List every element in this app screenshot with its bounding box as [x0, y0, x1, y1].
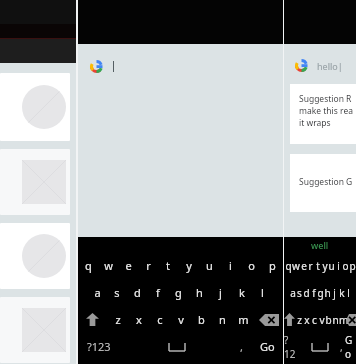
button[interactable]: w: [292, 253, 300, 279]
button[interactable]: Space: [147, 333, 207, 360]
button[interactable]: Shift: [78, 306, 107, 333]
staticText: q: [285, 259, 292, 273]
button[interactable]: Suggestion G: [290, 154, 356, 212]
button[interactable]: m: [233, 306, 254, 333]
staticText: z: [297, 313, 302, 327]
button[interactable]: g: [317, 279, 324, 306]
button[interactable]: well: [284, 237, 356, 253]
staticText: p: [269, 258, 276, 273]
staticText: u: [206, 258, 213, 273]
staticText: o: [342, 259, 349, 273]
button[interactable]: q: [284, 253, 292, 279]
button[interactable]: Suggestion R: [290, 84, 356, 144]
button[interactable]: d: [303, 279, 310, 306]
button[interactable]: x: [303, 306, 311, 333]
button[interactable]: Go: [345, 333, 356, 360]
button[interactable]: h: [324, 279, 331, 306]
button[interactable]: [0, 297, 70, 363]
button[interactable]: c: [311, 306, 318, 333]
button[interactable]: [0, 73, 70, 141]
staticText: c: [157, 312, 163, 327]
button[interactable]: r: [307, 253, 314, 279]
button[interactable]: [0, 149, 70, 215]
staticText: g: [175, 285, 182, 300]
staticText: w: [104, 258, 113, 273]
staticText: t: [316, 259, 320, 273]
button[interactable]: l: [345, 279, 352, 306]
staticText: n: [219, 312, 226, 327]
staticText: o: [248, 258, 255, 273]
button[interactable]: s: [107, 279, 127, 306]
button[interactable]: c: [149, 306, 170, 333]
button[interactable]: y: [321, 253, 328, 279]
button[interactable]: Shift: [284, 306, 295, 333]
staticText: ,: [340, 340, 343, 354]
button[interactable]: [0, 223, 70, 289]
button[interactable]: e: [300, 253, 307, 279]
button[interactable]: k: [231, 279, 252, 306]
button[interactable]: u: [328, 253, 335, 279]
button[interactable]: g: [168, 279, 189, 306]
button[interactable]: hello|: [295, 59, 343, 72]
button[interactable]: r: [138, 251, 158, 279]
button[interactable]: d: [127, 279, 147, 306]
staticText: ?123: [87, 339, 111, 354]
button[interactable]: k: [338, 279, 345, 306]
staticText: i: [337, 259, 340, 273]
button[interactable]: b: [191, 306, 212, 333]
staticText: w: [292, 259, 300, 273]
button[interactable]: t: [158, 251, 178, 279]
staticText: k: [239, 285, 245, 300]
staticText: well: [311, 239, 329, 251]
button[interactable]: j: [331, 279, 338, 306]
button[interactable]: p: [262, 251, 283, 279]
button[interactable]: n: [212, 306, 233, 333]
button[interactable]: y: [178, 251, 199, 279]
staticText: i: [229, 258, 232, 273]
button[interactable]: ?123: [284, 333, 299, 360]
button[interactable]: o: [241, 251, 262, 279]
button[interactable]: w: [98, 251, 118, 279]
staticText: a: [290, 286, 296, 300]
button[interactable]: u: [199, 251, 220, 279]
button[interactable]: Backspace: [254, 306, 283, 333]
button[interactable]: Space: [309, 333, 330, 360]
button[interactable]: [78, 44, 283, 237]
button[interactable]: o: [342, 253, 349, 279]
staticText: f: [312, 286, 316, 300]
button[interactable]: Backspace: [346, 306, 356, 333]
button[interactable]: ,: [231, 333, 251, 360]
staticText: l: [261, 285, 264, 300]
button[interactable]: t: [314, 253, 321, 279]
button[interactable]: a: [87, 279, 107, 306]
button[interactable]: z: [295, 306, 303, 333]
button[interactable]: v: [318, 306, 325, 333]
button[interactable]: l: [252, 279, 273, 306]
button[interactable]: ?123: [78, 333, 119, 360]
button[interactable]: n: [332, 306, 339, 333]
staticText: g: [317, 286, 324, 300]
staticText: ,: [240, 339, 243, 354]
button[interactable]: x: [128, 306, 149, 333]
button[interactable]: e: [118, 251, 138, 279]
button[interactable]: j: [210, 279, 231, 306]
button[interactable]: f: [147, 279, 168, 306]
button[interactable]: q: [78, 251, 98, 279]
staticText: e: [125, 258, 132, 273]
button[interactable]: i: [220, 251, 241, 279]
button[interactable]: p: [349, 253, 356, 279]
button[interactable]: h: [189, 279, 210, 306]
button[interactable]: i: [335, 253, 342, 279]
button[interactable]: ,: [338, 333, 345, 360]
button[interactable]: z: [107, 306, 128, 333]
button[interactable]: Go: [251, 333, 283, 360]
button[interactable]: b: [325, 306, 332, 333]
staticText: ?123: [284, 333, 299, 360]
button[interactable]: a: [289, 279, 296, 306]
staticText: q: [85, 258, 92, 273]
staticText: r: [146, 258, 151, 273]
button[interactable]: v: [170, 306, 191, 333]
button[interactable]: f: [310, 279, 317, 306]
button[interactable]: m: [339, 306, 346, 333]
button[interactable]: s: [296, 279, 303, 306]
